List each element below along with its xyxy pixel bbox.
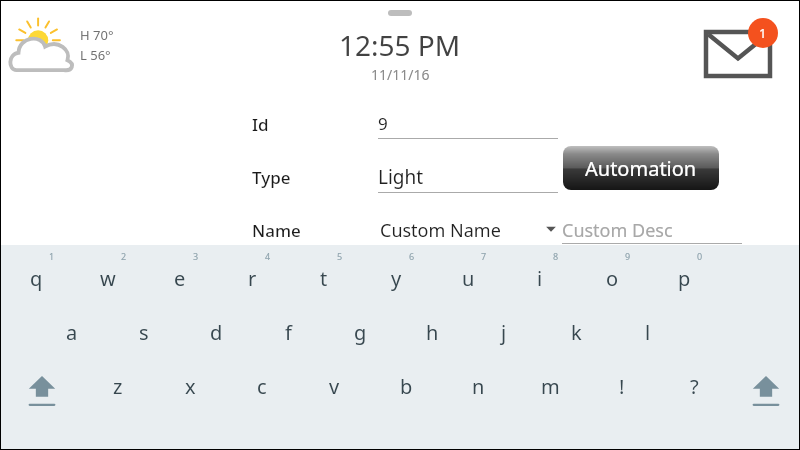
button[interactable]: 9	[378, 112, 388, 135]
staticText: l	[645, 319, 651, 346]
button[interactable]: t	[288, 256, 360, 300]
staticText: L 56°	[80, 46, 111, 64]
button[interactable]: i	[504, 256, 576, 300]
staticText: v	[329, 373, 340, 400]
staticText: 9	[378, 112, 388, 135]
staticText: p	[678, 265, 691, 292]
staticText: 11/11/16	[371, 65, 430, 84]
button[interactable]: Name	[252, 219, 301, 242]
staticText: w	[100, 265, 116, 292]
button[interactable]: v	[298, 364, 370, 408]
button[interactable]: q	[0, 256, 72, 300]
staticText: m	[541, 373, 560, 400]
button[interactable]: z	[82, 364, 154, 408]
staticText: o	[606, 265, 619, 292]
staticText: 0	[697, 250, 703, 262]
button[interactable]: Type	[252, 166, 291, 189]
staticText: d	[210, 319, 223, 346]
staticText: t	[320, 265, 328, 292]
staticText: 5	[337, 250, 343, 262]
staticText: ?	[690, 373, 699, 400]
staticText: 4	[265, 250, 271, 262]
staticText: g	[354, 319, 367, 346]
staticText: 8	[553, 250, 559, 262]
button[interactable]: !	[586, 364, 658, 408]
staticText: 12:55 PM	[339, 26, 461, 64]
staticText: 6	[409, 250, 415, 262]
button[interactable]: y	[360, 256, 432, 300]
button[interactable]: d	[180, 310, 252, 354]
button[interactable]: m	[514, 364, 586, 408]
button[interactable]: e	[144, 256, 216, 300]
button[interactable]: n	[442, 364, 514, 408]
button[interactable]: Custom Name	[380, 218, 501, 243]
button[interactable]: Messages, 1 unread	[700, 18, 784, 80]
staticText: b	[400, 373, 413, 400]
button[interactable]: w	[72, 256, 144, 300]
button[interactable]: s	[108, 310, 180, 354]
staticText: Custom Name	[380, 218, 501, 243]
button[interactable]: x	[154, 364, 226, 408]
button[interactable]: a	[36, 310, 108, 354]
button[interactable]: H 70°	[6, 16, 116, 82]
staticText: h	[426, 319, 439, 346]
staticText: 7	[481, 250, 487, 262]
button[interactable]: Shift	[20, 372, 64, 412]
staticText: j	[501, 319, 507, 346]
staticText: Light	[378, 164, 424, 190]
staticText: r	[248, 265, 257, 292]
staticText: i	[537, 265, 543, 292]
button[interactable]: b	[370, 364, 442, 408]
button[interactable]: Automation	[563, 146, 719, 190]
staticText: 3	[193, 250, 199, 262]
staticText: c	[257, 373, 267, 400]
button[interactable]: k	[540, 310, 612, 354]
button[interactable]: o	[576, 256, 648, 300]
staticText: 1	[49, 250, 55, 262]
staticText: u	[462, 265, 475, 292]
button[interactable]: f	[252, 310, 324, 354]
staticText: 1	[759, 24, 767, 42]
button[interactable]: 12:55 PM	[300, 26, 500, 84]
staticText: e	[174, 265, 186, 292]
staticText: z	[113, 373, 123, 400]
staticText: 9	[625, 250, 631, 262]
button[interactable]: Shift right	[744, 372, 788, 412]
staticText: 2	[121, 250, 127, 262]
staticText: x	[185, 373, 196, 400]
button[interactable]: l	[612, 310, 684, 354]
staticText: Id	[252, 113, 269, 136]
button[interactable]: ?	[658, 364, 730, 408]
button[interactable]: Select name	[540, 218, 562, 240]
staticText: Custom Desc	[562, 218, 673, 243]
staticText: y	[391, 265, 402, 292]
button[interactable]: Custom Desc	[562, 218, 673, 243]
staticText: q	[30, 265, 43, 292]
staticText: a	[66, 319, 78, 346]
button[interactable]: g	[324, 310, 396, 354]
staticText: s	[139, 319, 149, 346]
button[interactable]: j	[468, 310, 540, 354]
button[interactable]: h	[396, 310, 468, 354]
staticText: H 70°	[80, 26, 114, 44]
staticText: n	[472, 373, 485, 400]
staticText: k	[571, 319, 582, 346]
button[interactable]: r	[216, 256, 288, 300]
staticText: Automation	[585, 155, 697, 182]
button[interactable]: Id	[252, 113, 269, 136]
staticText: Type	[252, 166, 291, 189]
staticText: f	[285, 319, 292, 346]
button[interactable]: p	[648, 256, 720, 300]
button[interactable]: c	[226, 364, 298, 408]
staticText: Name	[252, 219, 301, 242]
button[interactable]: u	[432, 256, 504, 300]
staticText: !	[619, 373, 625, 400]
button[interactable]: Light	[378, 164, 424, 190]
